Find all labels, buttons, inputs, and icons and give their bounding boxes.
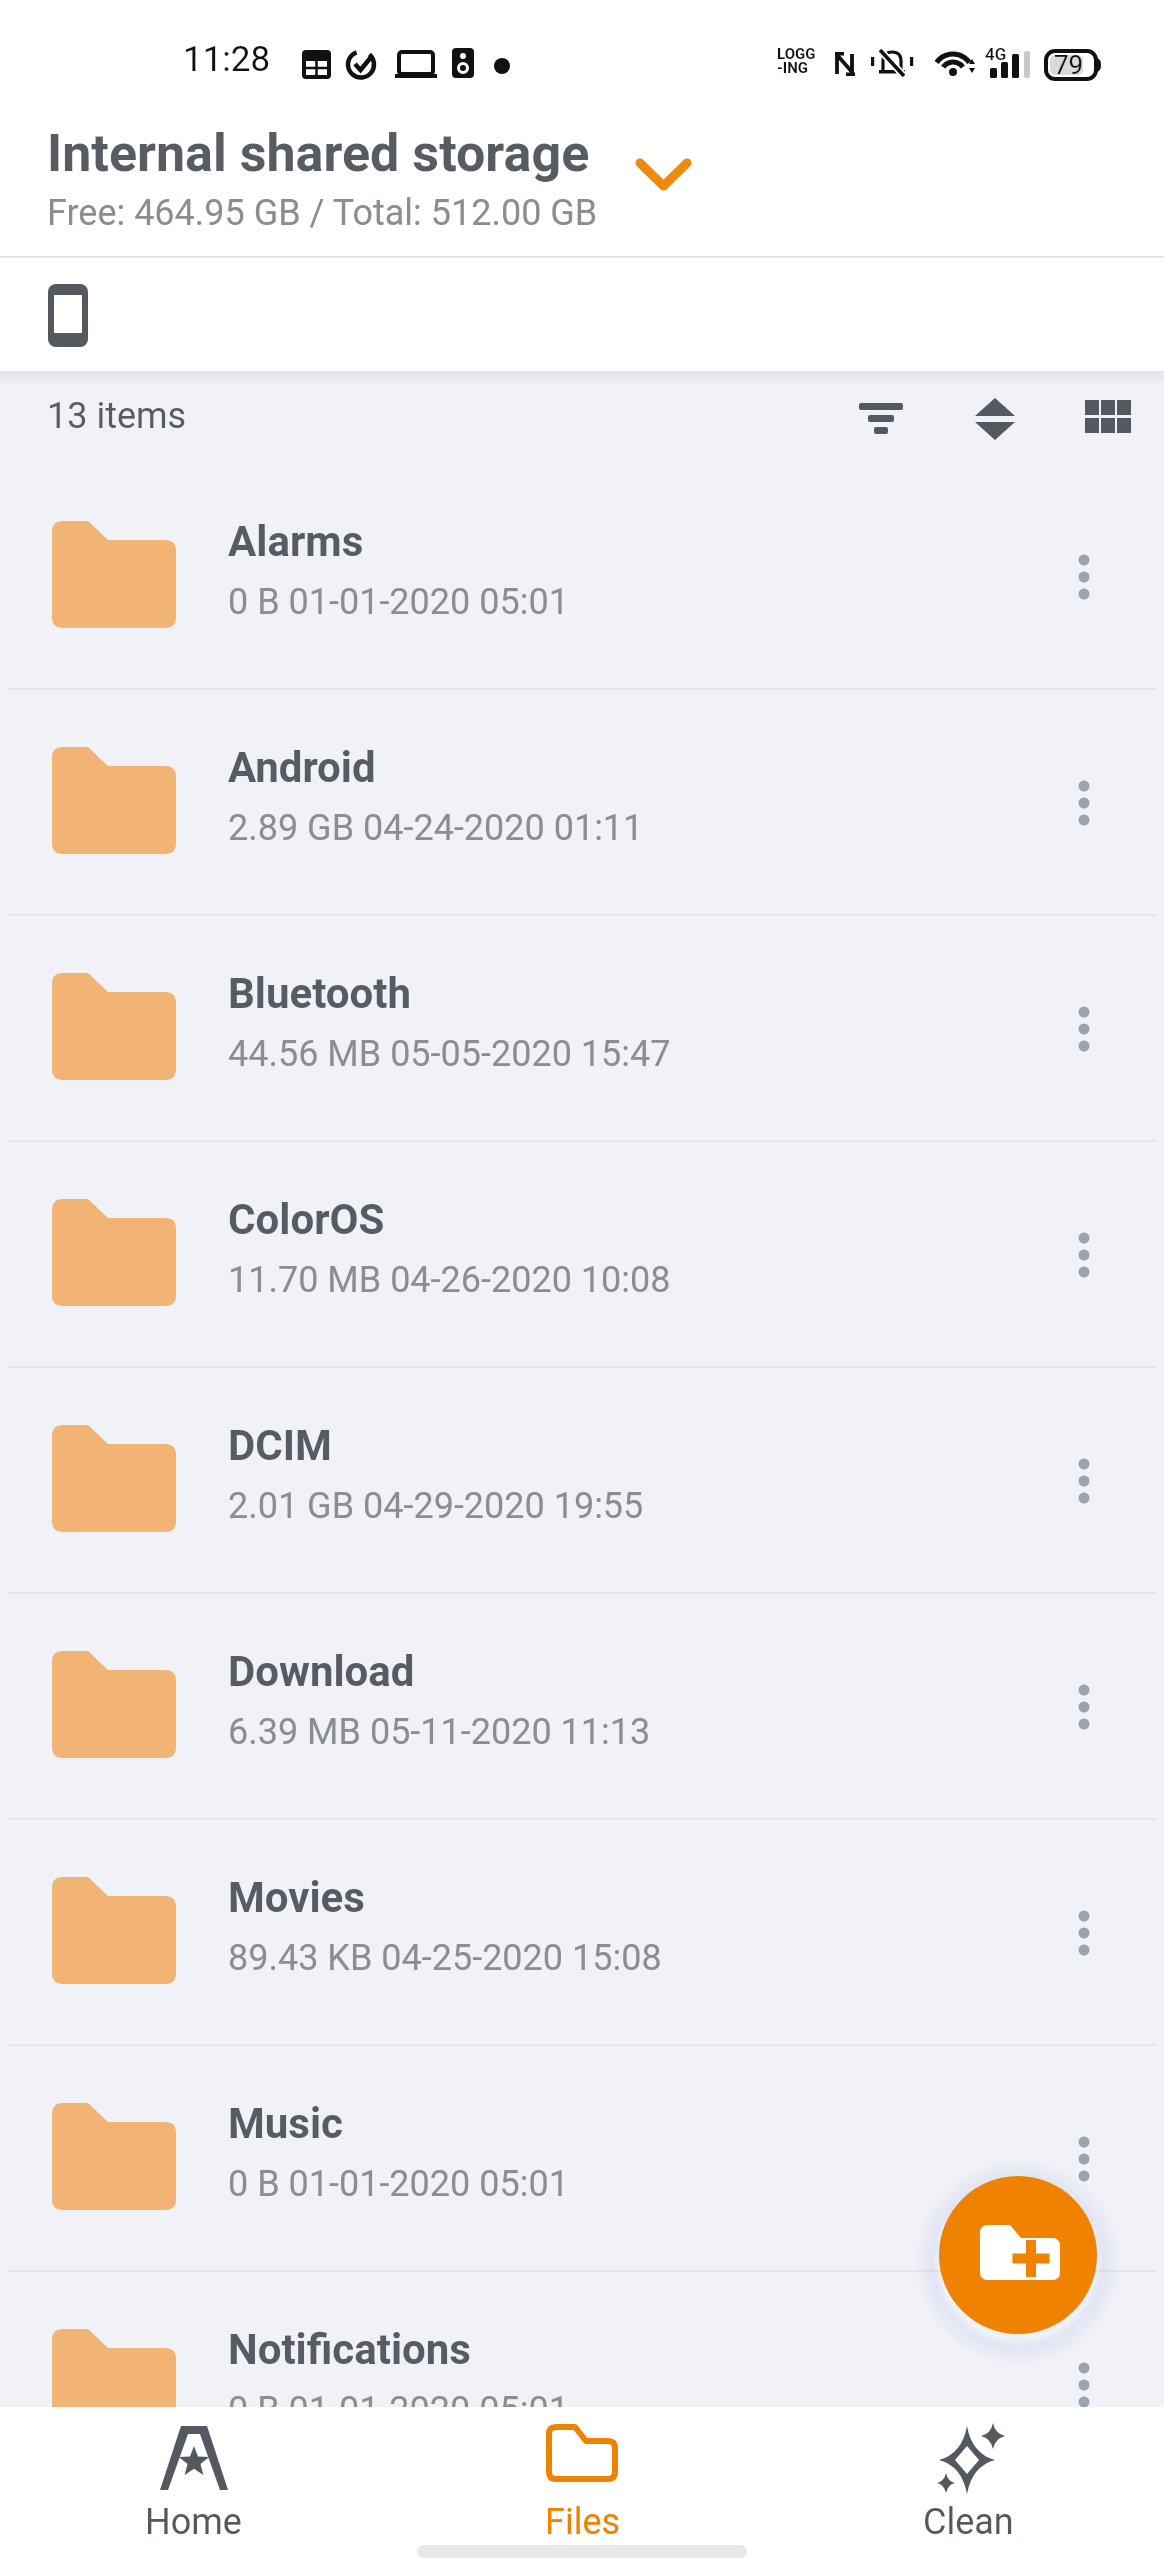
staticText: 13 items <box>47 395 187 437</box>
staticText: Free: 464.95 GB / Total: 512.00 GB <box>47 192 598 234</box>
staticText: Internal shared storage <box>47 123 590 184</box>
button[interactable]: Android <box>0 690 1164 916</box>
button[interactable]: Music <box>0 2046 1164 2272</box>
staticText: 79 <box>1054 50 1084 80</box>
button[interactable] <box>1040 2340 1128 2430</box>
button[interactable] <box>1040 2114 1128 2204</box>
button[interactable]: Download <box>0 1594 1164 1820</box>
staticText: 89.43 KB 04-25-2020 15:08 <box>228 1937 662 1979</box>
staticText: Movies <box>228 1873 365 1922</box>
staticText: ColorOS <box>228 1195 385 1244</box>
staticText: 0 B 01-01-2020 05:01 <box>228 2163 569 2205</box>
staticText: Android <box>228 743 376 792</box>
staticText: Clean <box>923 2501 1014 2543</box>
button[interactable]: Internal shared storage <box>0 110 1164 257</box>
staticText: Notifications <box>228 2325 471 2374</box>
button[interactable]: Clean <box>873 2407 1063 2560</box>
staticText: Alarms <box>228 517 364 566</box>
button[interactable]: Bluetooth <box>0 916 1164 1142</box>
staticText: LOGG <box>777 45 816 63</box>
button[interactable] <box>1072 387 1144 451</box>
staticText: 11.70 MB 04-26-2020 10:08 <box>228 1259 671 1301</box>
staticText: 4G <box>985 44 1007 64</box>
staticText: Bluetooth <box>228 969 411 1018</box>
staticText: 2.01 GB 04-29-2020 19:55 <box>228 1485 644 1527</box>
button[interactable]: Notifications <box>0 2272 1164 2498</box>
button[interactable]: DCIM <box>0 1368 1164 1594</box>
button[interactable]: Movies <box>0 1820 1164 2046</box>
button[interactable] <box>1040 1662 1128 1752</box>
button[interactable] <box>1040 1436 1128 1526</box>
button[interactable]: Home <box>97 2407 287 2560</box>
staticText: Download <box>228 1647 415 1696</box>
button[interactable] <box>845 387 917 451</box>
button[interactable] <box>1040 1888 1128 1978</box>
staticText: 0 B 01-01-2020 05:01 <box>228 2389 569 2431</box>
button[interactable] <box>1040 532 1128 622</box>
button[interactable] <box>0 258 1164 371</box>
staticText: 0 B 01-01-2020 05:01 <box>228 581 569 623</box>
staticText: Home <box>145 2501 242 2543</box>
button[interactable]: Alarms <box>0 464 1164 690</box>
button[interactable] <box>1040 984 1128 1074</box>
button[interactable] <box>959 387 1031 451</box>
button[interactable]: Files <box>487 2407 677 2560</box>
staticText: Music <box>228 2099 343 2148</box>
button[interactable]: ColorOS <box>0 1142 1164 1368</box>
button[interactable] <box>939 2176 1097 2334</box>
button[interactable] <box>1040 758 1128 848</box>
staticText: 2.89 GB 04-24-2020 01:11 <box>228 807 644 849</box>
staticText: 6.39 MB 05-11-2020 11:13 <box>228 1711 651 1753</box>
button[interactable] <box>1040 1210 1128 1300</box>
staticText: Files <box>545 2501 621 2543</box>
staticText: DCIM <box>228 1421 332 1470</box>
staticText: 11:28 <box>183 39 271 80</box>
staticText: -ING <box>777 59 809 77</box>
staticText: 44.56 MB 05-05-2020 15:47 <box>228 1033 671 1075</box>
